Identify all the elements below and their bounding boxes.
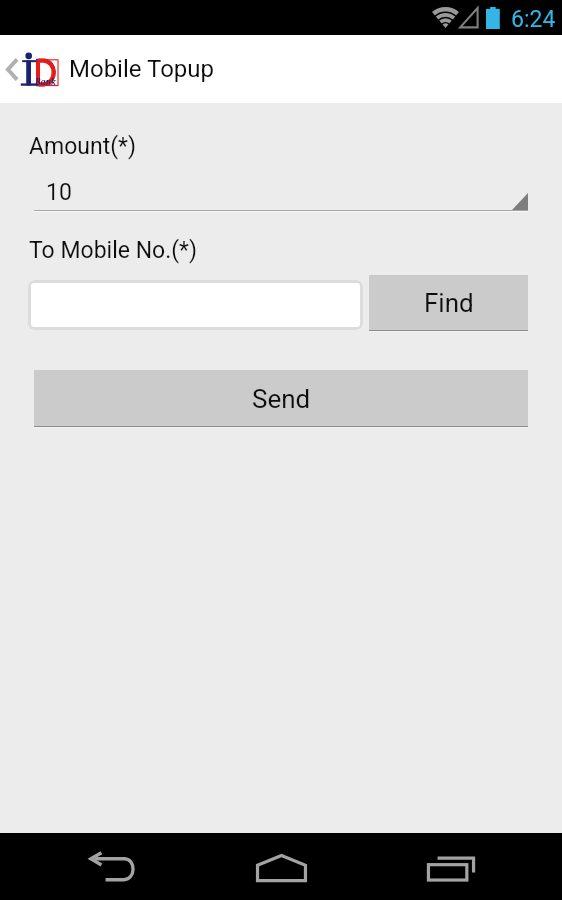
staticText: Bank [35,76,56,87]
staticText: 10 [46,179,72,206]
button[interactable] [34,163,528,212]
staticText: Mobile Topup [69,55,215,83]
staticText: 6:24 [511,6,556,33]
button[interactable]: Navigate up [0,35,225,103]
staticText: Find [424,288,474,318]
button[interactable] [28,280,363,330]
button[interactable]: Find [369,275,528,333]
button[interactable]: Send [34,370,528,428]
button[interactable]: Recent apps [366,833,536,900]
button[interactable]: Home [196,833,366,900]
staticText: To Mobile No.(*) [29,237,198,264]
staticText: Send [252,384,311,414]
button[interactable]: Back [27,833,197,900]
other: Navigate up [6,58,18,81]
staticText: Amount(*) [29,133,136,160]
